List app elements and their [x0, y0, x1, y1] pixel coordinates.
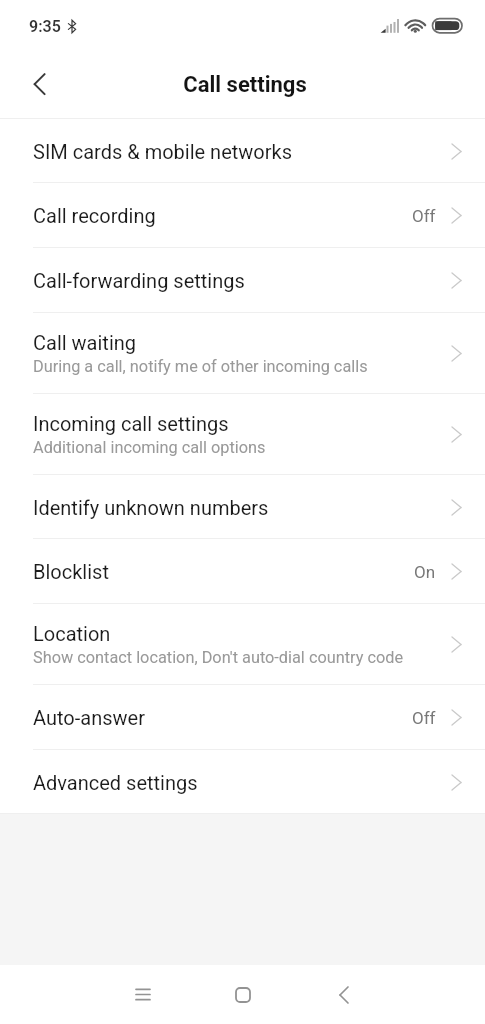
staticText: Auto-answer [33, 706, 145, 729]
staticText: On [414, 562, 436, 582]
button[interactable]: Recent apps [118, 965, 168, 1024]
button[interactable]: Call recording [0, 183, 485, 248]
staticText: Call settings [183, 72, 307, 98]
staticText: Off [412, 206, 436, 226]
staticText: Incoming call settings [33, 412, 229, 435]
staticText: Off [412, 708, 436, 728]
staticText: 9:35 [29, 17, 61, 36]
staticText: Identify unknown numbers [33, 496, 269, 519]
button[interactable]: Identify unknown numbers [0, 475, 485, 539]
button[interactable]: SIM cards & mobile networks [0, 119, 485, 183]
staticText: Call waiting [33, 331, 137, 354]
staticText: Location [33, 622, 111, 645]
button[interactable]: Location [0, 604, 485, 685]
button[interactable]: Home [218, 965, 268, 1024]
staticText: Call recording [33, 204, 156, 227]
staticText: Call-forwarding settings [33, 269, 245, 292]
button[interactable]: Call-forwarding settings [0, 248, 485, 313]
button[interactable]: Auto-answer [0, 685, 485, 750]
button[interactable]: Back [0, 55, 56, 118]
button[interactable]: Incoming call settings [0, 394, 485, 475]
staticText: Blocklist [33, 560, 109, 583]
staticText: Additional incoming call options [33, 438, 266, 457]
button[interactable]: Blocklist [0, 539, 485, 604]
staticText: Show contact location, Don't auto-dial c… [33, 648, 404, 667]
button[interactable]: Back [319, 965, 369, 1024]
staticText: Advanced settings [33, 771, 198, 794]
staticText: During a call, notify me of other incomi… [33, 357, 368, 376]
button[interactable]: Advanced settings [0, 750, 485, 814]
button[interactable]: Call waiting [0, 313, 485, 394]
staticText: SIM cards & mobile networks [33, 140, 292, 163]
